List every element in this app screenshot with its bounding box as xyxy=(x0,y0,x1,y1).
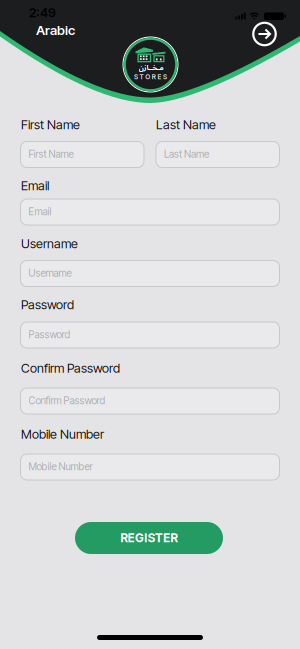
staticText: Last Name xyxy=(156,117,216,132)
staticText: O xyxy=(145,73,150,81)
staticText: 2:49 xyxy=(29,5,56,20)
staticText: Email xyxy=(21,178,49,193)
staticText: S xyxy=(163,73,167,81)
staticText: Username xyxy=(28,267,71,279)
staticText: Username xyxy=(21,236,78,251)
staticText: Confirm Password xyxy=(21,360,120,376)
staticText: R xyxy=(152,73,156,81)
staticText: Email xyxy=(28,205,51,218)
button[interactable]: REGISTER xyxy=(75,522,223,554)
staticText: S xyxy=(134,73,138,81)
staticText: Confirm Password xyxy=(28,394,105,407)
staticText: Mobile Number xyxy=(28,460,92,473)
staticText: T xyxy=(140,73,144,81)
staticText: Arabic xyxy=(36,22,75,38)
button[interactable]: Arabic xyxy=(36,22,75,38)
staticText: Mobile Number xyxy=(21,426,104,442)
staticText: First Name xyxy=(21,117,80,132)
button[interactable]: Continue xyxy=(253,23,276,45)
staticText: Last Name xyxy=(164,148,209,160)
staticText: E xyxy=(157,73,161,81)
staticText: مـخــازن xyxy=(138,60,163,75)
staticText: Password xyxy=(28,328,70,341)
staticText: First Name xyxy=(28,148,73,160)
staticText: Password xyxy=(21,297,74,312)
staticText: REGISTER xyxy=(120,531,178,545)
